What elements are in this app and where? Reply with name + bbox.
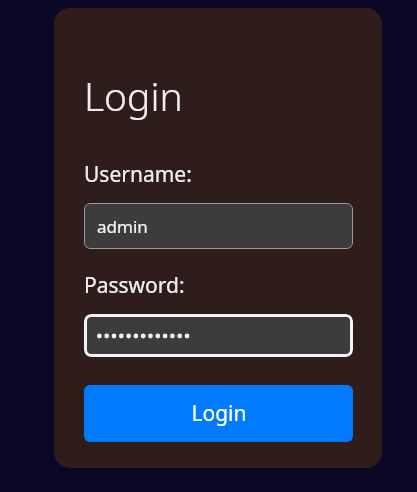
- staticText: admin: [97, 215, 148, 238]
- button[interactable]: Password: [84, 314, 353, 357]
- staticText: Username:: [84, 160, 192, 189]
- staticText: Password:: [84, 271, 185, 300]
- staticText: Login: [84, 69, 183, 122]
- button[interactable]: Login: [84, 385, 353, 442]
- button[interactable]: admin: [84, 203, 353, 249]
- staticText: Login: [191, 399, 247, 428]
